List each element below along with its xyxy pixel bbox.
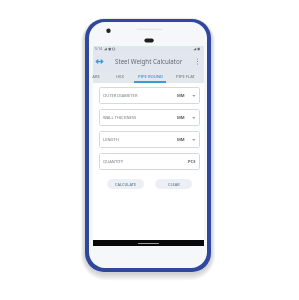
staticText: Steel Weight Calculator (115, 57, 183, 65)
staticText: MM (177, 115, 185, 121)
button[interactable]: QUANTITY (99, 153, 200, 170)
button[interactable]: More options (192, 51, 202, 71)
button[interactable]: CALCULATE (107, 179, 144, 189)
button[interactable]: PIPE FLAT (169, 71, 201, 83)
staticText: LENGTH (103, 137, 119, 143)
staticText: CLEAR (168, 182, 180, 187)
button[interactable]: CLEAR (155, 179, 192, 189)
button[interactable]: ARE (89, 71, 106, 83)
staticText: HEX (116, 74, 124, 80)
button[interactable]: LENGTH (99, 131, 200, 148)
staticText: PIPE FLAT (176, 74, 195, 80)
button[interactable]: WALL THICKNESS (99, 109, 200, 126)
staticText: MM (177, 93, 185, 99)
staticText: MM (177, 137, 185, 143)
button[interactable]: HEX (110, 71, 130, 83)
staticText: OUTER DIAMETER (103, 93, 138, 99)
button[interactable]: PIPE ROUND (134, 71, 166, 83)
staticText: ARE (92, 74, 100, 80)
staticText: QUANTITY (103, 159, 124, 165)
staticText: WALL THICKNESS (103, 115, 137, 121)
staticText: 5:14 (95, 46, 103, 51)
staticText: PCS (188, 159, 196, 165)
button[interactable]: OUTER DIAMETER (99, 87, 200, 104)
button[interactable]: App logo (93, 51, 106, 71)
staticText: PIPE ROUND (138, 74, 163, 80)
staticText: CALCULATE (115, 182, 137, 187)
